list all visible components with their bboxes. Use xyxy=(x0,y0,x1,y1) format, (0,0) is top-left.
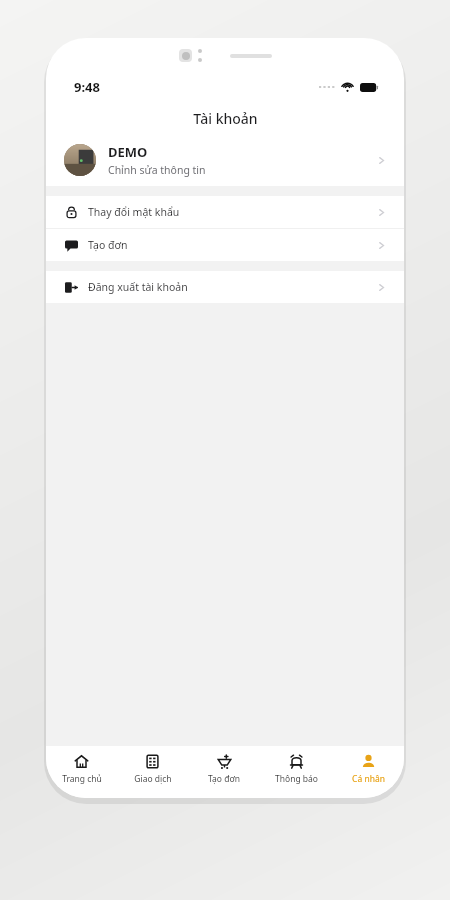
staticText: Cá nhân xyxy=(352,773,385,785)
staticText: Tạo đơn xyxy=(208,773,240,785)
staticText: Chỉnh sửa thông tin xyxy=(108,163,206,177)
staticText: Tạo đơn xyxy=(88,238,377,252)
staticText: 9:48 xyxy=(74,78,100,96)
button[interactable]: Giao dịch xyxy=(117,746,188,798)
staticText: Trang chủ xyxy=(62,773,102,785)
staticText: Thay đổi mật khẩu xyxy=(88,205,377,219)
staticText: Tài khoản xyxy=(193,109,258,128)
button[interactable]: Trang chủ xyxy=(46,746,117,798)
button[interactable]: Thông báo xyxy=(260,746,332,798)
button[interactable]: Cá nhân xyxy=(332,746,404,798)
staticText: Thông báo xyxy=(275,773,318,785)
staticText: Giao dịch xyxy=(134,773,172,785)
button[interactable]: Tạo đơn xyxy=(46,229,404,261)
button[interactable]: Tạo đơn xyxy=(188,746,260,798)
staticText: Đăng xuất tài khoản xyxy=(88,280,377,294)
button[interactable]: Thay đổi mật khẩu xyxy=(46,196,404,228)
button[interactable]: Đăng xuất tài khoản xyxy=(46,271,404,303)
staticText: DEMO xyxy=(108,143,148,161)
button[interactable]: DEMO xyxy=(46,134,404,186)
